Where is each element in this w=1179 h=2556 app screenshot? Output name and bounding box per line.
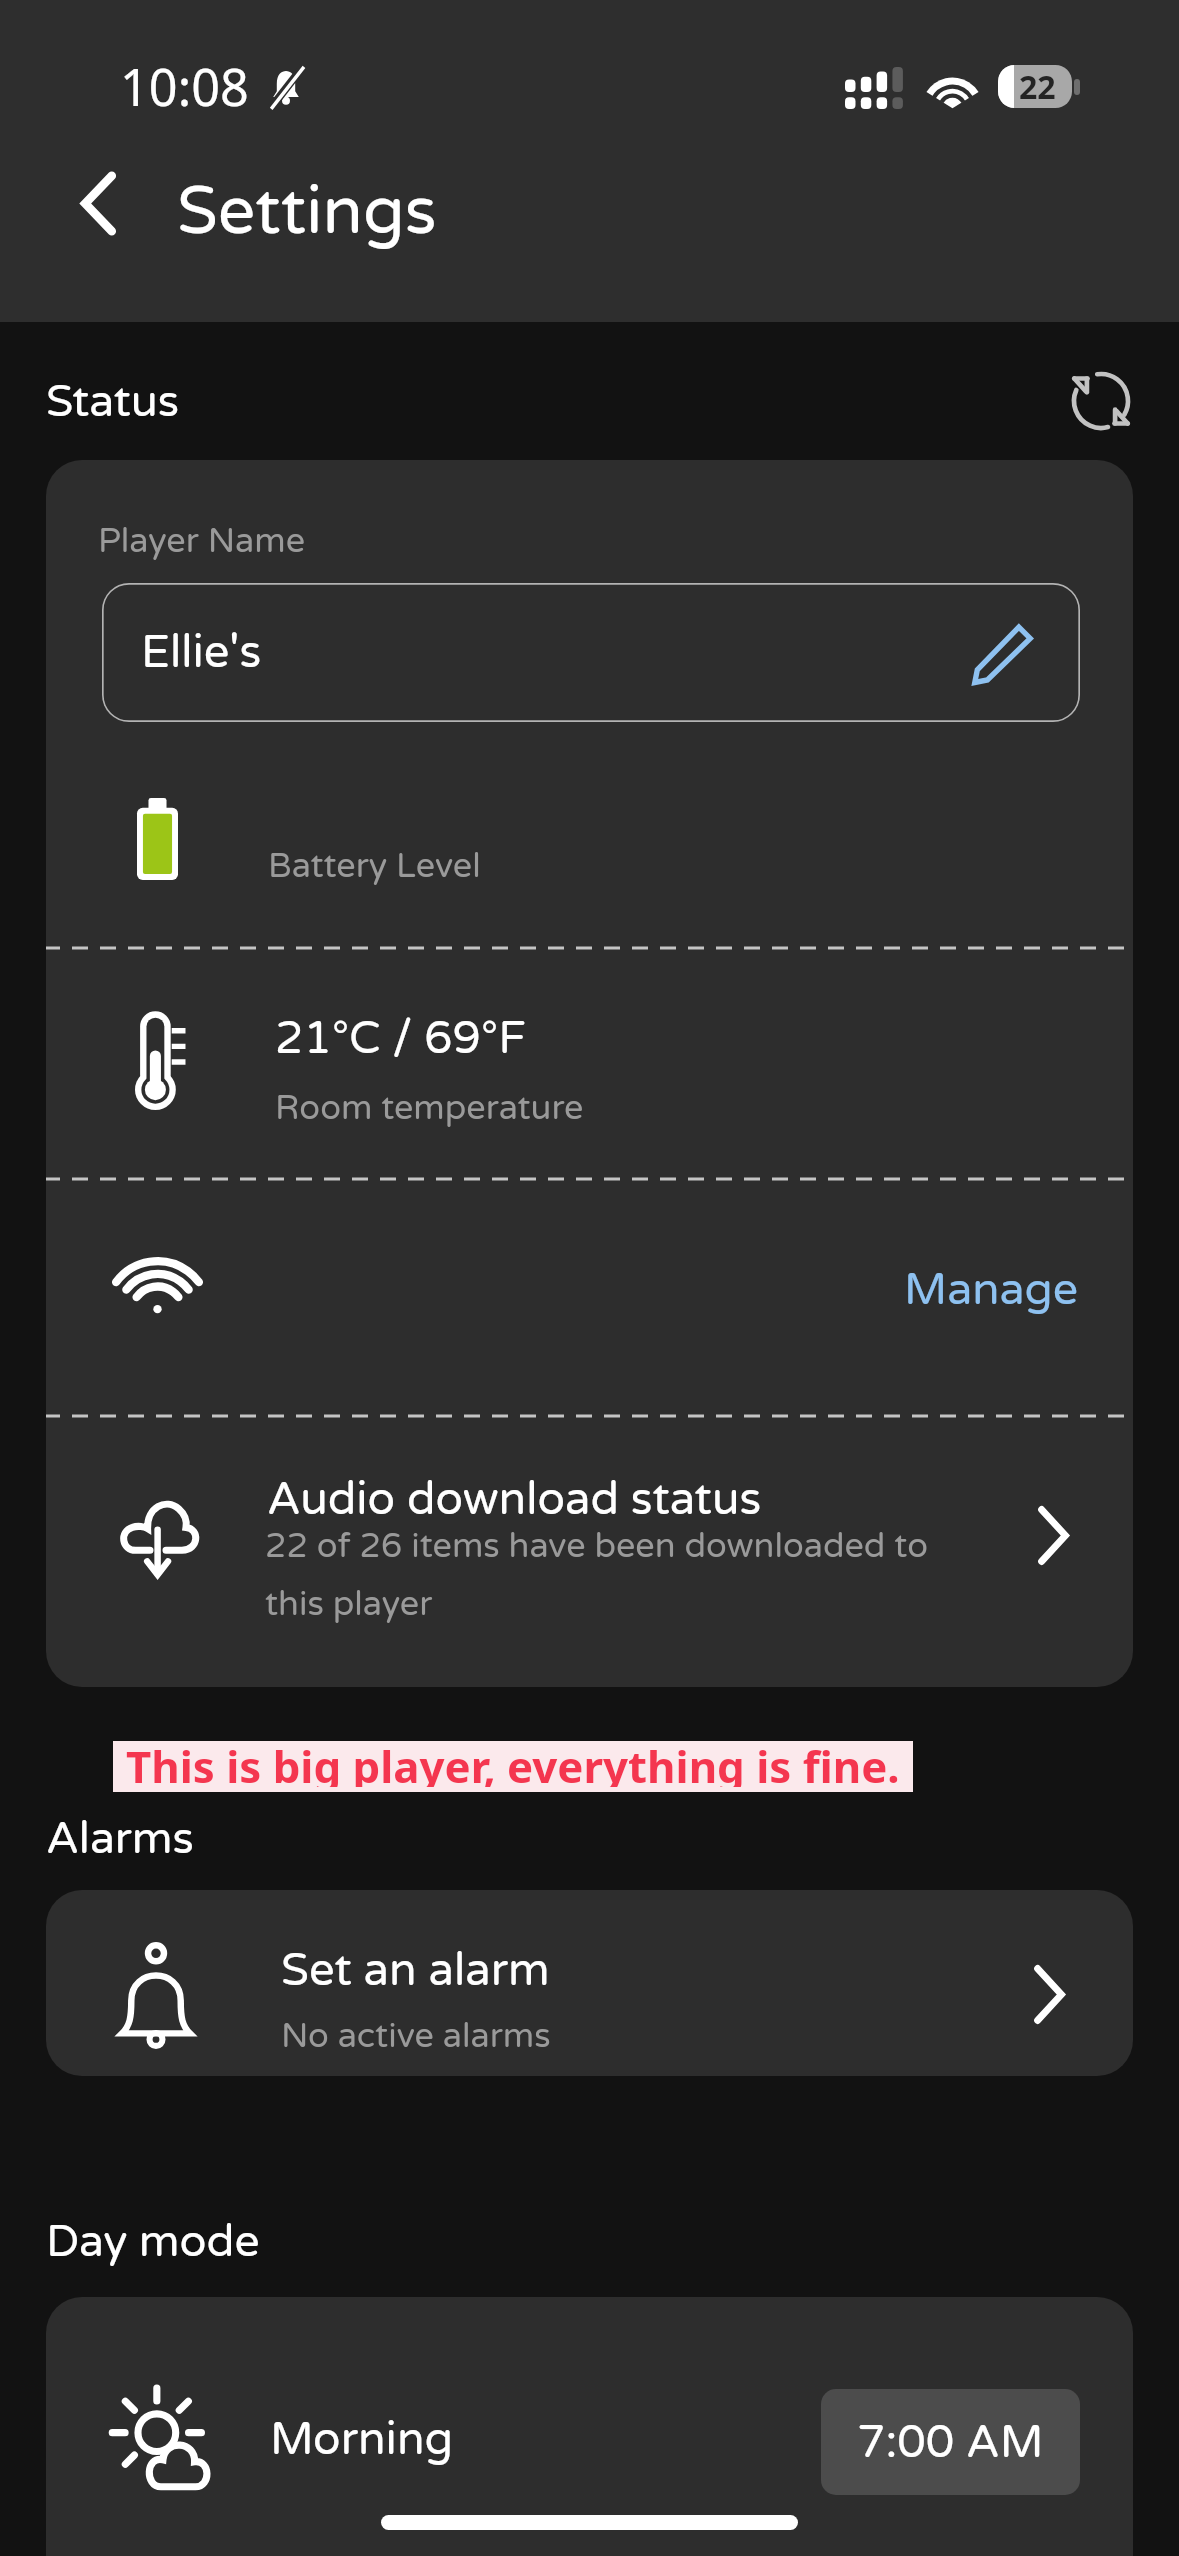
staticText: 22 of 26 items have been downloaded to t… <box>265 1526 931 1625</box>
staticText: 21°C / 69°F <box>275 1011 526 1066</box>
staticText: No active alarms <box>281 2016 551 2057</box>
button[interactable]: Morning <box>46 2297 1133 2556</box>
staticText: Room temperature <box>275 1088 584 1129</box>
staticText: Day mode <box>46 2215 260 2268</box>
staticText: This is big player, everything is fine. <box>126 1736 900 1787</box>
staticText: Player Name <box>98 521 306 562</box>
staticText: Morning <box>270 2412 454 2467</box>
button[interactable]: Set an alarm <box>46 1890 1133 2076</box>
staticText: Ellie's <box>141 625 262 680</box>
staticText: 10:08 <box>120 52 249 121</box>
button[interactable]: Refresh <box>1029 353 1173 449</box>
staticText: 22 <box>1019 65 1056 108</box>
staticText: Set an alarm <box>281 1943 550 1998</box>
staticText: 7:00 AM <box>857 2415 1044 2470</box>
button[interactable]: Edit player name <box>948 599 1056 707</box>
staticText: Audio download status <box>267 1472 762 1527</box>
staticText: Alarms <box>46 1812 194 1865</box>
button[interactable]: Ellie's <box>102 583 1080 722</box>
button[interactable]: Back <box>26 131 170 275</box>
button[interactable]: 7:00 AM <box>821 2389 1080 2495</box>
button[interactable]: Audio download status <box>999 1481 1107 1589</box>
staticText: Settings <box>177 172 437 252</box>
staticText: Status <box>46 375 180 428</box>
staticText: Battery Level <box>268 846 481 887</box>
staticText: Manage <box>904 1263 1079 1317</box>
